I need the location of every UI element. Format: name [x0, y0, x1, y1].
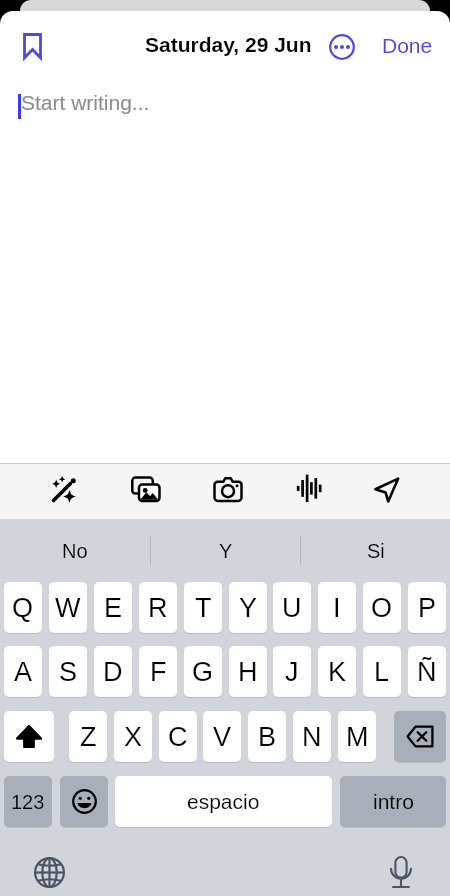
button[interactable]: espacio	[115, 776, 332, 827]
staticText: H	[238, 657, 258, 687]
button[interactable]: K	[318, 646, 356, 697]
button[interactable]: Camera	[187, 464, 268, 515]
button[interactable]: O	[363, 582, 401, 633]
button[interactable]: Done	[374, 25, 440, 65]
staticText: Si	[367, 540, 385, 562]
button[interactable]: Shift	[4, 711, 54, 762]
button[interactable]: Ñ	[408, 646, 446, 697]
staticText: B	[258, 722, 277, 752]
button[interactable]: Z	[69, 711, 107, 762]
button[interactable]: W	[49, 582, 87, 633]
button[interactable]: 123	[4, 776, 52, 827]
button[interactable]: Q	[4, 582, 42, 633]
staticText: V	[213, 722, 232, 752]
staticText: Y	[219, 540, 233, 562]
staticText: R	[148, 593, 168, 623]
button[interactable]: Y	[151, 519, 300, 582]
staticText: No	[62, 540, 88, 562]
staticText: espacio	[187, 790, 260, 813]
staticText: Start writing...	[21, 91, 150, 114]
button[interactable]: Backspace	[394, 711, 446, 762]
staticText: G	[192, 657, 214, 687]
staticText: Q	[12, 593, 34, 623]
staticText: T	[195, 593, 212, 623]
button[interactable]: T	[184, 582, 222, 633]
button[interactable]: Y	[229, 582, 267, 633]
button[interactable]: Magic wand	[23, 464, 105, 515]
staticText: Ñ	[417, 657, 437, 687]
staticText: F	[150, 657, 167, 687]
staticText: E	[104, 593, 123, 623]
button[interactable]: Bookmark	[9, 23, 56, 69]
staticText: P	[418, 593, 437, 623]
button[interactable]: Voice input	[376, 847, 426, 896]
button[interactable]: G	[184, 646, 222, 697]
staticText: C	[168, 722, 188, 752]
button[interactable]: Photos	[105, 464, 187, 515]
staticText: intro	[373, 790, 414, 813]
button[interactable]: X	[114, 711, 152, 762]
staticText: D	[103, 657, 123, 687]
staticText: U	[282, 593, 302, 623]
button[interactable]: S	[49, 646, 87, 697]
button[interactable]: D	[94, 646, 132, 697]
staticText: K	[328, 657, 347, 687]
button[interactable]: Audio	[268, 464, 349, 515]
staticText: S	[59, 657, 78, 687]
button[interactable]: F	[139, 646, 177, 697]
button[interactable]: More options	[322, 27, 362, 67]
staticText: Saturday, 29 Jun	[145, 33, 312, 56]
button[interactable]: A	[4, 646, 42, 697]
staticText: W	[55, 593, 81, 623]
staticText: Y	[239, 593, 258, 623]
staticText: M	[346, 722, 369, 752]
staticText: 123	[11, 791, 45, 813]
button[interactable]: Change keyboard	[24, 847, 74, 896]
button[interactable]: R	[139, 582, 177, 633]
staticText: X	[124, 722, 143, 752]
button[interactable]: I	[318, 582, 356, 633]
button[interactable]: L	[363, 646, 401, 697]
button[interactable]: Emoji	[60, 776, 108, 827]
staticText: A	[14, 657, 33, 687]
staticText: Z	[80, 722, 97, 752]
staticText: O	[371, 593, 393, 623]
button[interactable]: B	[248, 711, 286, 762]
staticText: Done	[382, 34, 433, 57]
staticText: J	[285, 657, 299, 687]
button[interactable]: V	[203, 711, 241, 762]
staticText: L	[374, 657, 390, 687]
button[interactable]: J	[273, 646, 311, 697]
button[interactable]: Send	[349, 464, 430, 515]
button[interactable]: P	[408, 582, 446, 633]
staticText: I	[333, 593, 341, 623]
button[interactable]: Si	[301, 519, 450, 582]
button[interactable]: N	[293, 711, 331, 762]
button[interactable]: M	[338, 711, 376, 762]
button[interactable]: E	[94, 582, 132, 633]
button[interactable]: H	[229, 646, 267, 697]
staticText: N	[302, 722, 322, 752]
button[interactable]: intro	[340, 776, 446, 827]
button[interactable]: C	[159, 711, 197, 762]
button[interactable]: U	[273, 582, 311, 633]
button[interactable]: No	[0, 519, 150, 582]
